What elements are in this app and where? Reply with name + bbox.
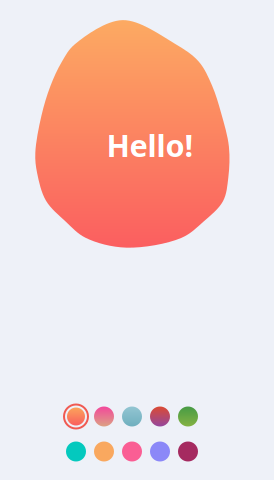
button[interactable]: Apricot [90, 436, 118, 466]
button[interactable]: Plum [174, 436, 202, 466]
button[interactable]: Sunset [62, 401, 90, 431]
button[interactable]: Blossom [90, 401, 118, 431]
button[interactable]: Lilac [146, 436, 174, 466]
button[interactable]: Lagoon [118, 401, 146, 431]
button[interactable]: Dusk [146, 401, 174, 431]
button[interactable]: Rose [118, 436, 146, 466]
button[interactable]: Teal [62, 436, 90, 466]
staticText: Hello! [106, 125, 193, 165]
button[interactable]: Meadow [174, 401, 202, 431]
